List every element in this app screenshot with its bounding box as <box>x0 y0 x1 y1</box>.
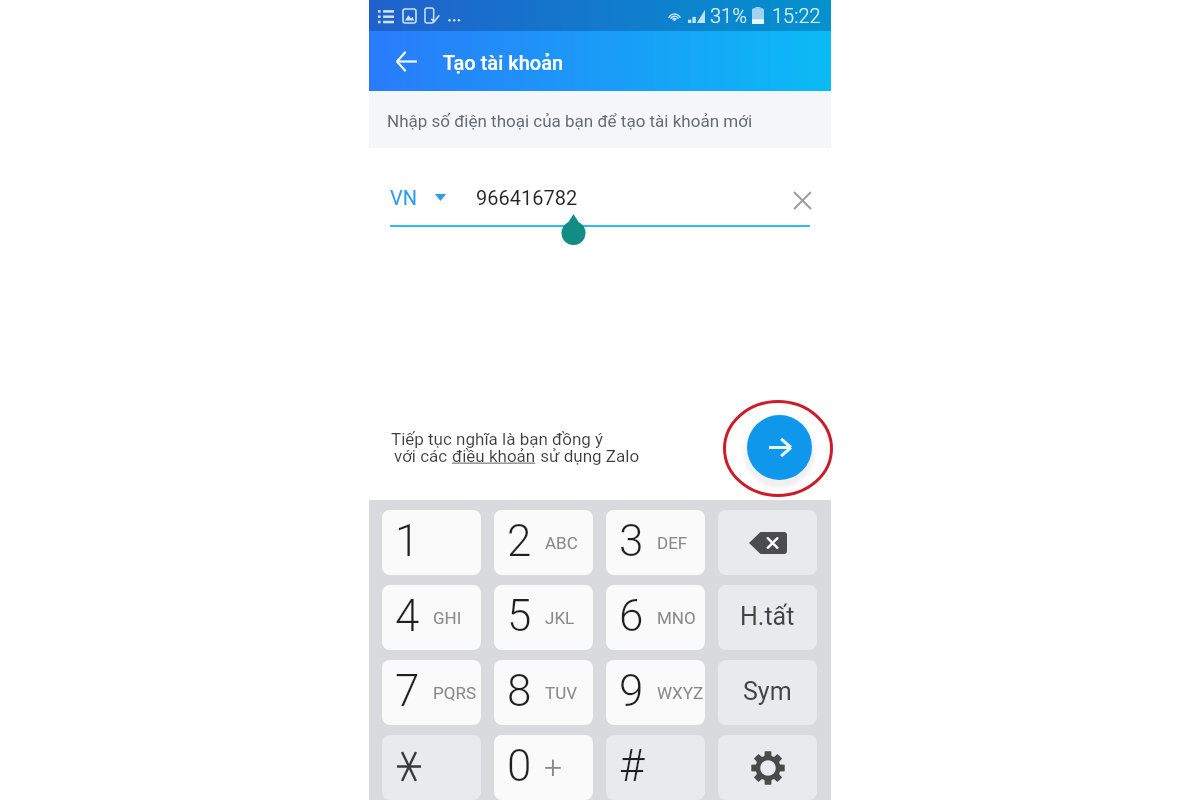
button[interactable]: 1 <box>382 510 481 575</box>
staticText: + <box>544 748 563 786</box>
staticText: MNO <box>657 608 696 628</box>
staticText: 31% <box>710 4 747 27</box>
staticText: 8 <box>507 665 532 717</box>
staticText: Nhập số điện thoại của bạn để tạo tài kh… <box>387 111 753 131</box>
button[interactable]: Continue <box>747 415 812 480</box>
staticText: JKL <box>545 608 575 628</box>
staticText: 2 <box>507 515 532 567</box>
staticText: TUV <box>545 683 577 703</box>
button[interactable]: 0 <box>494 735 593 800</box>
staticText: WXYZ <box>657 683 704 703</box>
staticText: GHI <box>433 608 462 628</box>
staticText: 4 <box>395 590 420 642</box>
button[interactable]: Sym <box>718 660 817 725</box>
staticText: 9 <box>619 665 644 717</box>
button[interactable]: 5 <box>494 585 593 650</box>
staticText: VN <box>390 186 418 209</box>
button[interactable]: VN <box>390 186 446 209</box>
staticText: 0 <box>507 740 532 792</box>
button[interactable]: Clear <box>786 184 818 216</box>
button[interactable]: điều khoản <box>452 446 536 466</box>
staticText: sử dụng Zalo <box>536 446 640 466</box>
button[interactable]: Settings <box>718 735 817 800</box>
button[interactable]: 3 <box>606 510 705 575</box>
staticText: 1 <box>395 515 420 567</box>
button[interactable]: 2 <box>494 510 593 575</box>
staticText: với các <box>394 446 452 466</box>
staticText: 15:22 <box>772 4 821 27</box>
staticText: DEF <box>657 533 688 553</box>
button[interactable]: 8 <box>494 660 593 725</box>
staticText: 966416782 <box>476 186 578 209</box>
staticText: 7 <box>395 665 420 717</box>
button[interactable]: H.tất <box>718 585 817 650</box>
button[interactable] <box>382 735 481 800</box>
button[interactable]: 7 <box>382 660 481 725</box>
button[interactable]: 4 <box>382 585 481 650</box>
staticText: ABC <box>545 533 578 553</box>
button[interactable]: Backspace <box>718 510 817 575</box>
button[interactable]: Back <box>383 38 429 84</box>
staticText: 5 <box>507 590 532 642</box>
staticText: 3 <box>619 515 644 567</box>
button[interactable]: # <box>606 735 705 800</box>
staticText: Tiếp tục nghĩa là bạn đồng ý <box>391 429 604 449</box>
staticText: 6 <box>619 590 644 642</box>
button[interactable]: 9 <box>606 660 705 725</box>
staticText: # <box>619 740 645 792</box>
staticText: Sym <box>743 677 792 706</box>
button[interactable]: 6 <box>606 585 705 650</box>
staticText: Tạo tài khoản <box>443 51 564 74</box>
staticText: PQRS <box>433 683 476 703</box>
staticText: H.tất <box>740 602 795 631</box>
